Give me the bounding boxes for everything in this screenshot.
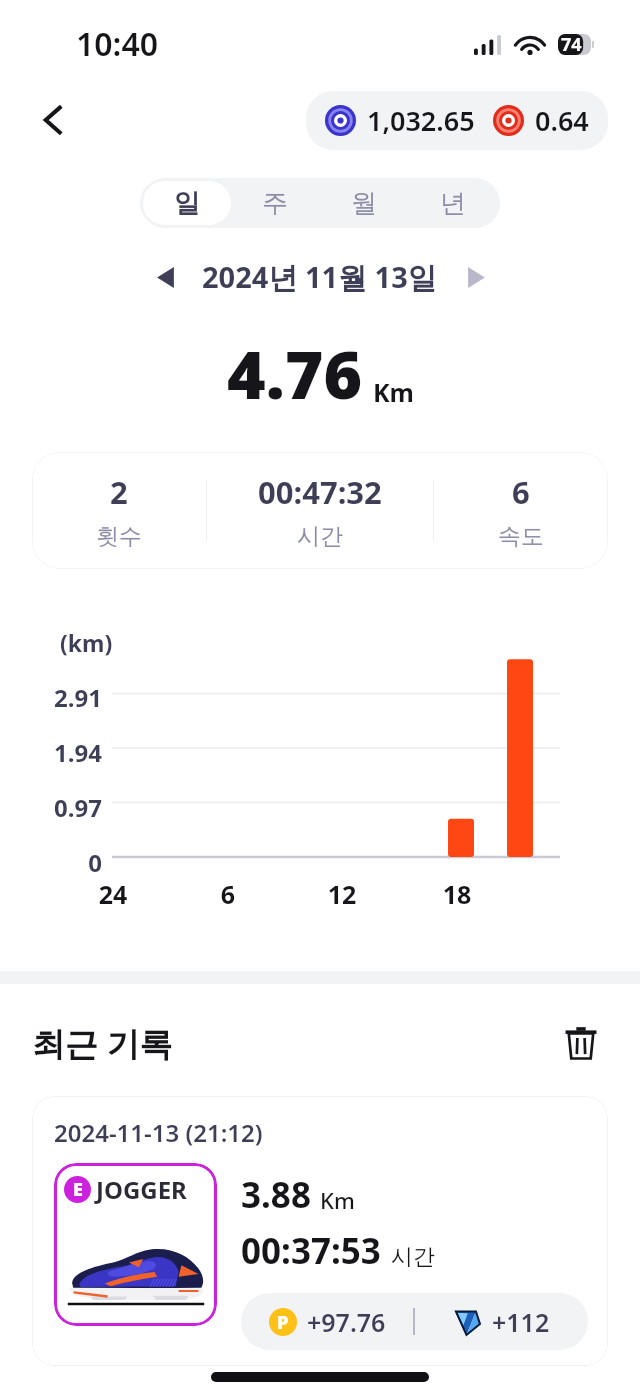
staticText: 횟수	[96, 522, 142, 551]
button[interactable]: P	[241, 1293, 588, 1350]
button[interactable]: 2	[32, 452, 608, 569]
staticText: 10:40	[76, 22, 159, 66]
button[interactable]: 년	[408, 181, 497, 225]
staticText: 6	[512, 471, 530, 513]
staticText: 주	[262, 187, 288, 220]
staticText: 00:47:32	[258, 471, 382, 513]
staticText: 3.88	[241, 1171, 311, 1219]
staticText: 0.97	[0, 791, 102, 824]
staticText: (km)	[60, 627, 113, 658]
button[interactable]: 2024-11-13 (21:12)	[32, 1096, 608, 1366]
staticText: P	[277, 1310, 289, 1335]
button[interactable]: 1,032.65	[306, 91, 608, 150]
staticText: +97.76	[307, 1305, 386, 1339]
staticText: 18	[427, 877, 487, 911]
staticText: 1,032.65	[367, 102, 475, 139]
staticText: Km	[373, 375, 414, 409]
staticText: 최근 기록	[32, 1021, 173, 1066]
staticText: 4.76	[227, 328, 363, 418]
staticText: +112	[492, 1305, 550, 1339]
staticText: 년	[440, 187, 466, 220]
staticText: 1.94	[0, 736, 102, 769]
staticText: 24	[83, 877, 143, 911]
staticText: 12	[312, 877, 372, 911]
staticText: 00:37:53	[241, 1227, 381, 1275]
staticText: 2	[110, 471, 128, 513]
staticText: 일	[174, 187, 200, 220]
button[interactable]: 주	[231, 181, 319, 225]
staticText: JOGGER	[96, 1173, 187, 1206]
staticText: 6	[198, 877, 258, 911]
button[interactable]: E	[54, 1163, 217, 1326]
staticText: 월	[351, 187, 377, 220]
button[interactable]: 일	[143, 181, 231, 225]
staticText: 시간	[391, 1243, 435, 1271]
staticText: 0	[0, 846, 102, 879]
staticText: 74	[561, 32, 582, 57]
staticText: 시간	[297, 522, 343, 551]
staticText: 2024-11-13 (21:12)	[54, 1116, 263, 1149]
button[interactable]: 월	[319, 181, 408, 225]
staticText: E	[73, 1177, 83, 1202]
staticText: 2024년 11월 13일	[202, 257, 437, 297]
button[interactable]: Previous day	[140, 252, 190, 302]
button[interactable]: Next day	[451, 252, 501, 302]
staticText: 0.64	[535, 102, 589, 139]
button[interactable]: Back	[24, 91, 82, 149]
button[interactable]: Delete all records	[552, 1014, 610, 1072]
staticText: Km	[320, 1185, 355, 1215]
staticText: 속도	[498, 522, 544, 551]
staticText: 2.91	[0, 681, 102, 714]
